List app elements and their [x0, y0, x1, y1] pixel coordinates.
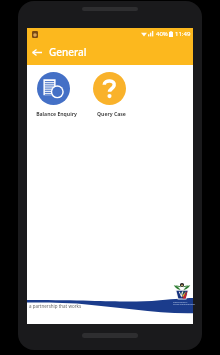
button[interactable]: Query Case	[93, 72, 126, 118]
button[interactable]: Back	[29, 44, 45, 60]
button[interactable]: Balance Enquiry	[37, 72, 70, 118]
staticText: Query Case	[97, 111, 126, 118]
staticText: 11:49	[175, 30, 191, 38]
staticText: General	[49, 45, 87, 59]
staticText: 40%	[156, 30, 168, 38]
staticText: a partnership that works	[29, 303, 82, 309]
staticText: Department: Social Development	[173, 300, 196, 306]
staticText: Balance Enquiry	[36, 111, 77, 118]
